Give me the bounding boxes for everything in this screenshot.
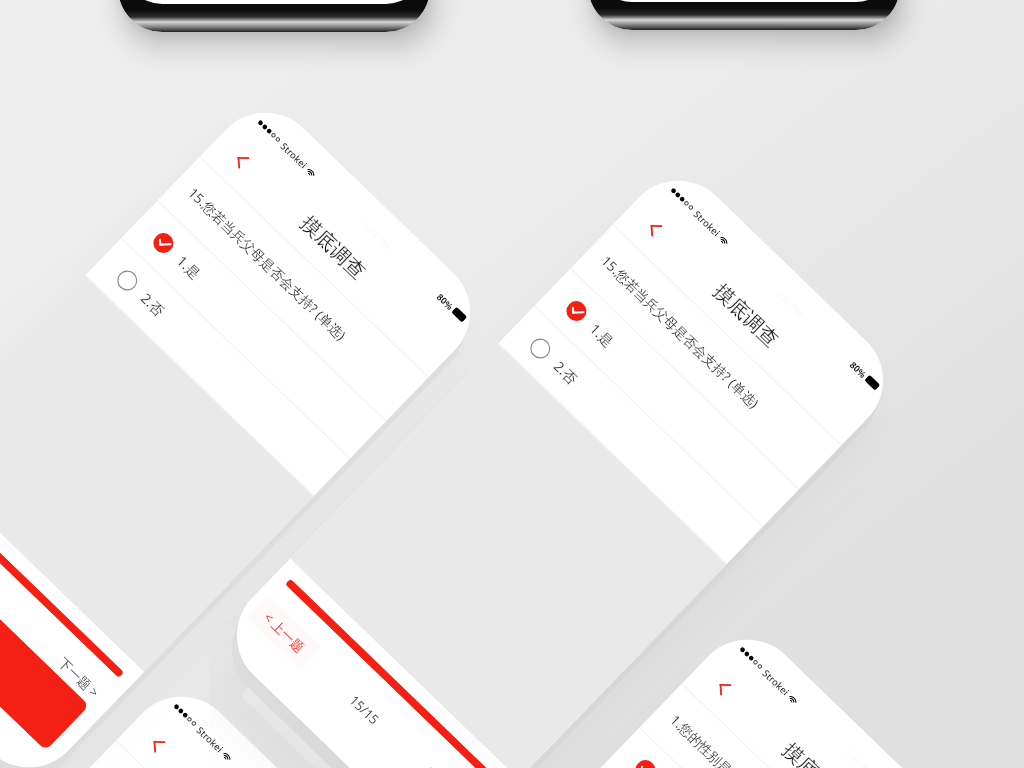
staticText: 摸底调查 [777, 738, 852, 768]
button[interactable]: Back [134, 721, 180, 766]
staticText: 80% [435, 291, 457, 312]
button[interactable]: 提 交 [0, 507, 89, 751]
button[interactable]: 1.是 [621, 744, 856, 768]
staticText: 摸底调查 [295, 211, 370, 284]
staticText: 2.否 [137, 289, 169, 320]
button[interactable]: 2.否 [516, 323, 751, 553]
button[interactable]: 1.是 [552, 285, 787, 515]
staticText: < 上一题 [260, 608, 309, 656]
staticText: 摸底调查 [708, 279, 783, 352]
button[interactable]: Back [218, 137, 264, 182]
staticText: Strokei [278, 140, 310, 171]
button[interactable]: < 上一题 [247, 595, 322, 669]
button[interactable]: 下一题 > [40, 640, 118, 715]
staticText: 15/15 [346, 691, 383, 728]
button[interactable]: 下一题 > [408, 751, 483, 768]
staticText: 下一题 > [55, 653, 103, 701]
staticText: 80% [848, 359, 870, 380]
staticText: Strokei [194, 724, 226, 755]
staticText: Strokei [691, 208, 723, 239]
staticText: 15.您若当兵父母是否会支持? (单选) [597, 252, 763, 413]
staticText: 1.您的性别是? (单选) [666, 711, 768, 768]
staticText: Strokei [760, 667, 792, 698]
staticText: 2.否 [550, 357, 582, 388]
staticText: 15.您若当兵父母是否会支持? (单选) [184, 184, 350, 345]
staticText: 1.是 [586, 319, 618, 351]
button[interactable]: 1.是 [139, 217, 374, 447]
button[interactable]: Back [631, 205, 677, 250]
button[interactable]: Back [700, 664, 746, 709]
button[interactable]: 2.否 [103, 255, 338, 485]
staticText: 1.是 [173, 251, 205, 283]
